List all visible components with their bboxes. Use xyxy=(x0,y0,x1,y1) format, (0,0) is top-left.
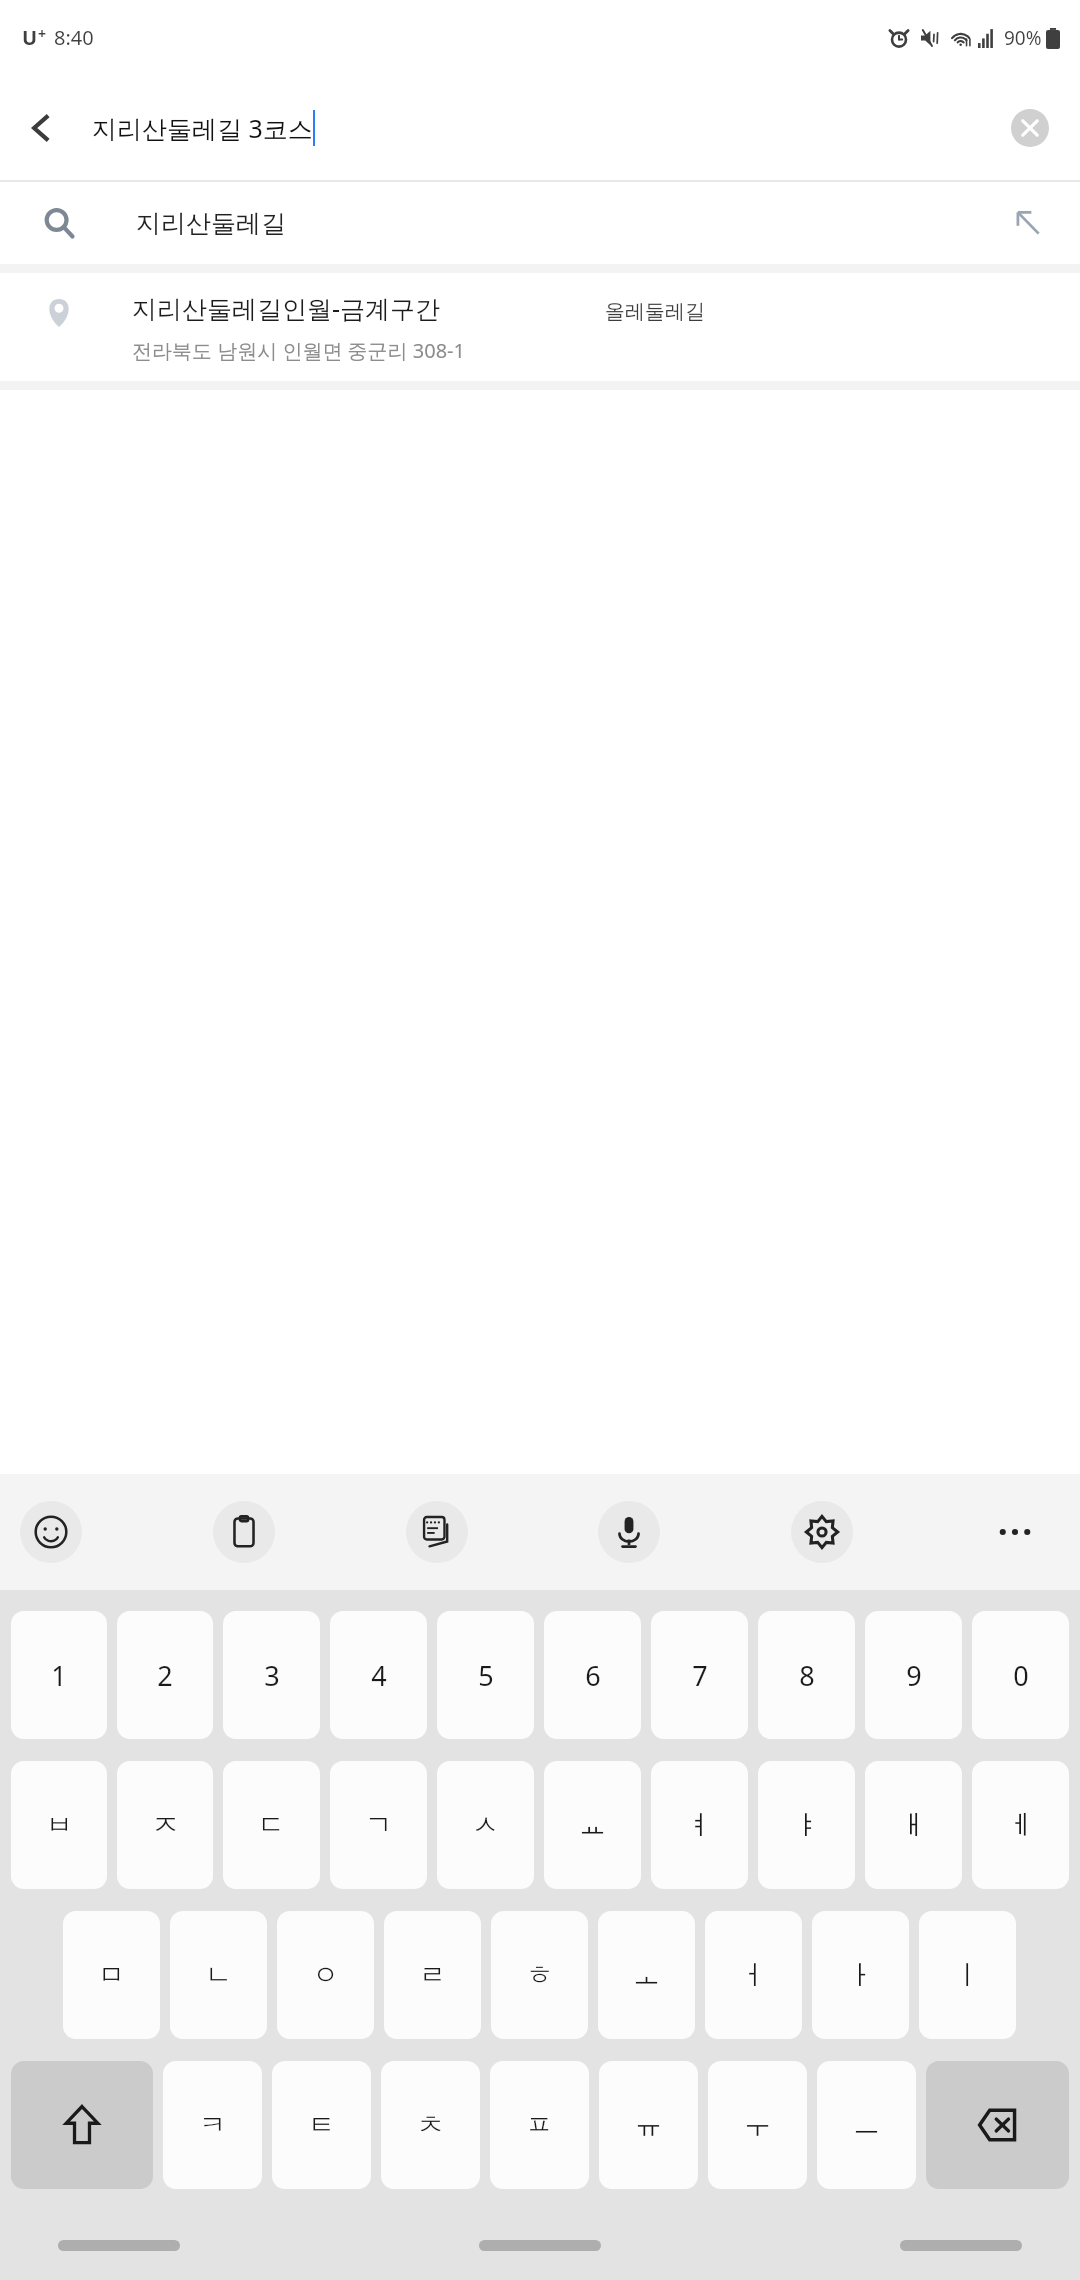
button[interactable]: ㅊ xyxy=(381,2061,480,2189)
staticText: ㅅ xyxy=(472,1808,499,1842)
staticText: ㅁ xyxy=(98,1958,125,1992)
staticText: ㅣ xyxy=(954,1958,981,1992)
button[interactable]: 7 xyxy=(651,1611,748,1739)
staticText: ㄷ xyxy=(258,1808,285,1842)
button[interactable]: 6 xyxy=(544,1611,641,1739)
staticText: ㅊ xyxy=(417,2108,444,2142)
button[interactable]: Navigation button xyxy=(58,2240,180,2251)
button[interactable]: ㅠ xyxy=(599,2061,698,2189)
staticText: 90% xyxy=(1004,25,1042,51)
button[interactable]: ㅍ xyxy=(490,2061,589,2189)
staticText: 5 xyxy=(478,1657,494,1694)
staticText: 4 xyxy=(371,1657,387,1694)
button[interactable]: ㅗ xyxy=(598,1911,695,2039)
staticText: ㅍ xyxy=(526,2108,553,2142)
button[interactable]: ㅇ xyxy=(277,1911,374,2039)
button[interactable]: 8 xyxy=(758,1611,855,1739)
button[interactable]: ㅈ xyxy=(117,1761,213,1889)
button[interactable]: ㅣ xyxy=(919,1911,1016,2039)
staticText: 지리산둘레길인월-금계구간 xyxy=(132,291,441,325)
staticText: ㅈ xyxy=(152,1808,179,1842)
button[interactable]: ㅁ xyxy=(63,1911,160,2039)
button[interactable]: 5 xyxy=(437,1611,534,1739)
staticText: 0 xyxy=(1013,1657,1029,1694)
staticText: 전라북도 남원시 인월면 중군리 308-1 xyxy=(132,337,465,364)
staticText: ㅡ xyxy=(853,2108,880,2142)
staticText: 지리산둘레길 3코스 xyxy=(92,111,313,145)
button[interactable]: 3 xyxy=(223,1611,320,1739)
button[interactable]: ㅐ xyxy=(865,1761,962,1889)
button[interactable]: ㅔ xyxy=(972,1761,1069,1889)
staticText: 지리산둘레길 xyxy=(136,208,286,239)
staticText: 8 xyxy=(799,1657,815,1694)
button[interactable]: ㅜ xyxy=(708,2061,807,2189)
staticText: ㅋ xyxy=(199,2108,226,2142)
button[interactable]: Navigation button xyxy=(900,2240,1022,2251)
button[interactable]: 0 xyxy=(972,1611,1069,1739)
staticText: 6 xyxy=(585,1657,601,1694)
button[interactable]: ㅌ xyxy=(272,2061,371,2189)
staticText: U xyxy=(22,24,38,51)
staticText: ㅛ xyxy=(579,1808,606,1842)
button[interactable]: Shift xyxy=(11,2061,153,2189)
staticText: ㅕ xyxy=(686,1808,713,1842)
staticText: ㅗ xyxy=(633,1958,660,1992)
button[interactable]: More options xyxy=(984,1501,1046,1563)
button[interactable]: ㅑ xyxy=(758,1761,855,1889)
staticText: ㅑ xyxy=(793,1808,820,1842)
button[interactable]: Emoji xyxy=(20,1501,82,1563)
button[interactable]: ㄹ xyxy=(384,1911,481,2039)
button[interactable]: ㅂ xyxy=(11,1761,107,1889)
staticText: ㅏ xyxy=(847,1958,874,1992)
staticText: ㅓ xyxy=(740,1958,767,1992)
staticText: 2 xyxy=(157,1657,173,1694)
staticText: ㅌ xyxy=(308,2108,335,2142)
button[interactable]: Backspace xyxy=(926,2061,1069,2189)
staticText: ㅠ xyxy=(635,2108,662,2142)
staticText: 1 xyxy=(51,1657,67,1694)
button[interactable]: ㅎ xyxy=(491,1911,588,2039)
button[interactable]: ㄱ xyxy=(330,1761,427,1889)
button[interactable]: ㅋ xyxy=(163,2061,262,2189)
button[interactable]: ㅕ xyxy=(651,1761,748,1889)
button[interactable]: 지리산둘레길인월-금계구간 xyxy=(0,273,1080,381)
button[interactable]: ㅡ xyxy=(817,2061,916,2189)
staticText: ㄱ xyxy=(365,1808,392,1842)
staticText: ㅎ xyxy=(526,1958,553,1992)
button[interactable]: ㅓ xyxy=(705,1911,802,2039)
button[interactable]: ㄴ xyxy=(170,1911,267,2039)
button[interactable]: ㄷ xyxy=(223,1761,320,1889)
staticText: 9 xyxy=(906,1657,922,1694)
button[interactable]: 4 xyxy=(330,1611,427,1739)
staticText: ㅜ xyxy=(744,2108,771,2142)
button[interactable]: Settings xyxy=(791,1501,853,1563)
button[interactable]: 9 xyxy=(865,1611,962,1739)
staticText: 올레둘레길 xyxy=(605,299,705,324)
button[interactable]: Keyboard modes xyxy=(406,1501,468,1563)
button[interactable]: Voice input xyxy=(598,1501,660,1563)
button[interactable]: Back xyxy=(10,96,74,160)
staticText: + xyxy=(38,24,47,43)
button[interactable]: Clipboard xyxy=(213,1501,275,1563)
button[interactable]: 지리산둘레길 xyxy=(0,182,1080,264)
staticText: ㅐ xyxy=(900,1808,927,1842)
button[interactable]: 1 xyxy=(11,1611,107,1739)
button[interactable]: Navigation button xyxy=(479,2240,601,2251)
staticText: ㄴ xyxy=(205,1958,232,1992)
button[interactable]: ㅅ xyxy=(437,1761,534,1889)
staticText: ㅇ xyxy=(312,1958,339,1992)
staticText: ㄹ xyxy=(419,1958,446,1992)
button[interactable]: Clear text xyxy=(1004,102,1056,154)
button[interactable]: ㅛ xyxy=(544,1761,641,1889)
button[interactable]: ㅏ xyxy=(812,1911,909,2039)
staticText: 8:40 xyxy=(54,24,94,51)
staticText: ㅔ xyxy=(1007,1808,1034,1842)
staticText: 3 xyxy=(264,1657,280,1694)
staticText: ㅂ xyxy=(46,1808,73,1842)
staticText: 7 xyxy=(692,1657,708,1694)
button[interactable]: 2 xyxy=(117,1611,213,1739)
